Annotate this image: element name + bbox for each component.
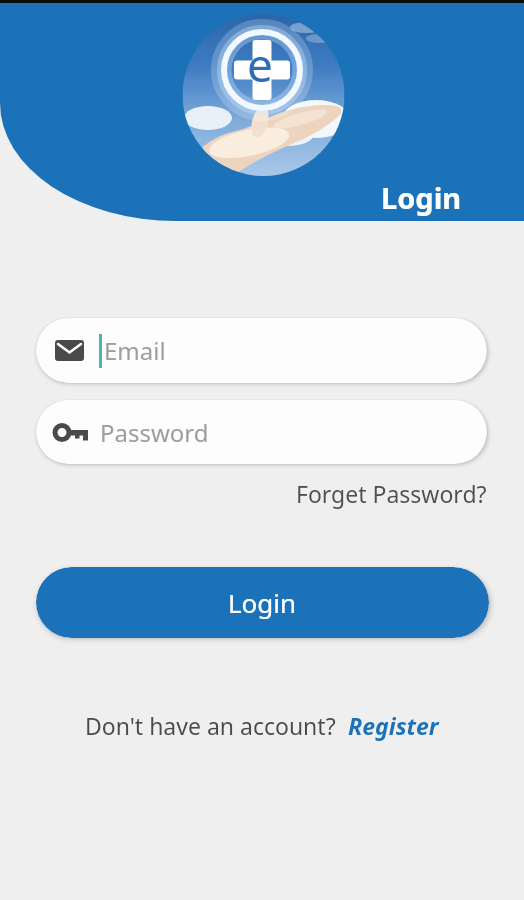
staticText: Password: [100, 416, 209, 449]
button[interactable]: Forget Password?: [296, 478, 487, 509]
staticText: Login: [228, 585, 297, 620]
staticText: Login: [381, 178, 462, 217]
staticText: e: [247, 33, 273, 96]
staticText: Don't have an account?: [85, 710, 336, 741]
button[interactable]: Email: [36, 318, 487, 383]
button[interactable]: Password: [36, 400, 487, 464]
button[interactable]: Login: [36, 567, 489, 638]
staticText: Email: [104, 334, 166, 367]
button[interactable]: Register: [348, 710, 439, 741]
